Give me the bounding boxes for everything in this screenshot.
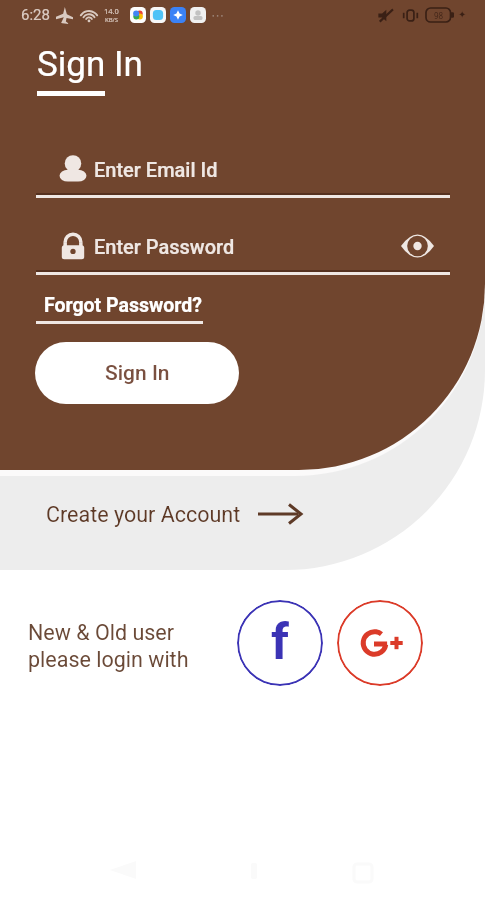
staticText: Enter Password: [94, 235, 235, 258]
staticText: f: [271, 613, 289, 672]
button[interactable]: Sign In: [35, 342, 239, 404]
staticText: Sign In: [37, 44, 143, 85]
staticText: Forgot Password?: [44, 294, 202, 317]
staticText: Enter Email Id: [94, 158, 218, 181]
button[interactable]: Sign in with Facebook: [237, 600, 323, 686]
button[interactable]: Create your Account: [46, 501, 301, 527]
staticText: ⋯: [211, 8, 224, 23]
staticText: 6:28: [21, 6, 50, 24]
button[interactable]: Forgot Password?: [36, 294, 203, 324]
staticText: 14.0: [104, 6, 119, 16]
button[interactable]: Sign in with Google Plus: [337, 600, 423, 686]
staticText: New & Old user please login with: [28, 620, 189, 673]
button[interactable]: Show password: [397, 229, 437, 263]
staticText: ✦: [458, 9, 467, 21]
staticText: Create your Account: [46, 502, 241, 527]
staticText: KB/S: [105, 16, 119, 24]
staticText: 98: [434, 10, 444, 21]
staticText: Sign In: [105, 361, 170, 386]
